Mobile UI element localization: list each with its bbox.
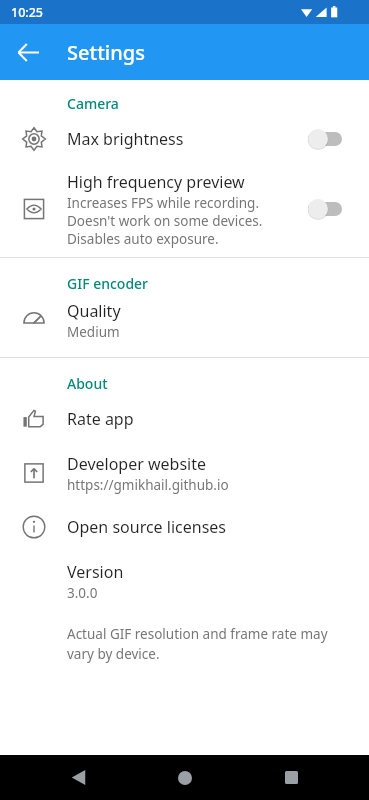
staticText: https://gmikhail.github.io [67,476,229,494]
button[interactable]: Toggle [307,195,351,223]
button[interactable]: Back [50,755,106,800]
staticText: Max brightness [67,128,184,150]
button[interactable]: High frequency preview [0,165,369,253]
staticText: About [67,374,108,393]
button[interactable]: Rate app [0,393,369,445]
staticText: Open source licenses [67,516,226,538]
staticText: Camera [67,94,119,113]
button[interactable]: Recents [263,755,319,800]
staticText: GIF encoder [67,274,149,293]
button[interactable]: Home [157,755,213,800]
button[interactable]: Version [0,553,369,609]
staticText: Actual GIF resolution and frame rate may… [67,625,343,663]
staticText: Settings [67,39,145,66]
staticText: Medium [67,323,120,341]
staticText: 3.0.0 [67,584,98,602]
button[interactable]: Toggle [307,125,351,153]
staticText: Developer website [67,453,207,475]
staticText: 10:25 [11,4,44,21]
button[interactable]: Quality [0,293,369,347]
button[interactable]: Max brightness [0,113,369,165]
button[interactable]: Open source licenses [0,501,369,553]
staticText: Quality [67,300,121,322]
button[interactable]: Developer website [0,445,369,501]
staticText: Version [67,561,124,583]
staticText: Rate app [67,408,134,430]
staticText: High frequency preview [67,171,245,193]
button[interactable]: Back [6,30,50,74]
staticText: Increases FPS while recording. Doesn't w… [67,194,263,248]
